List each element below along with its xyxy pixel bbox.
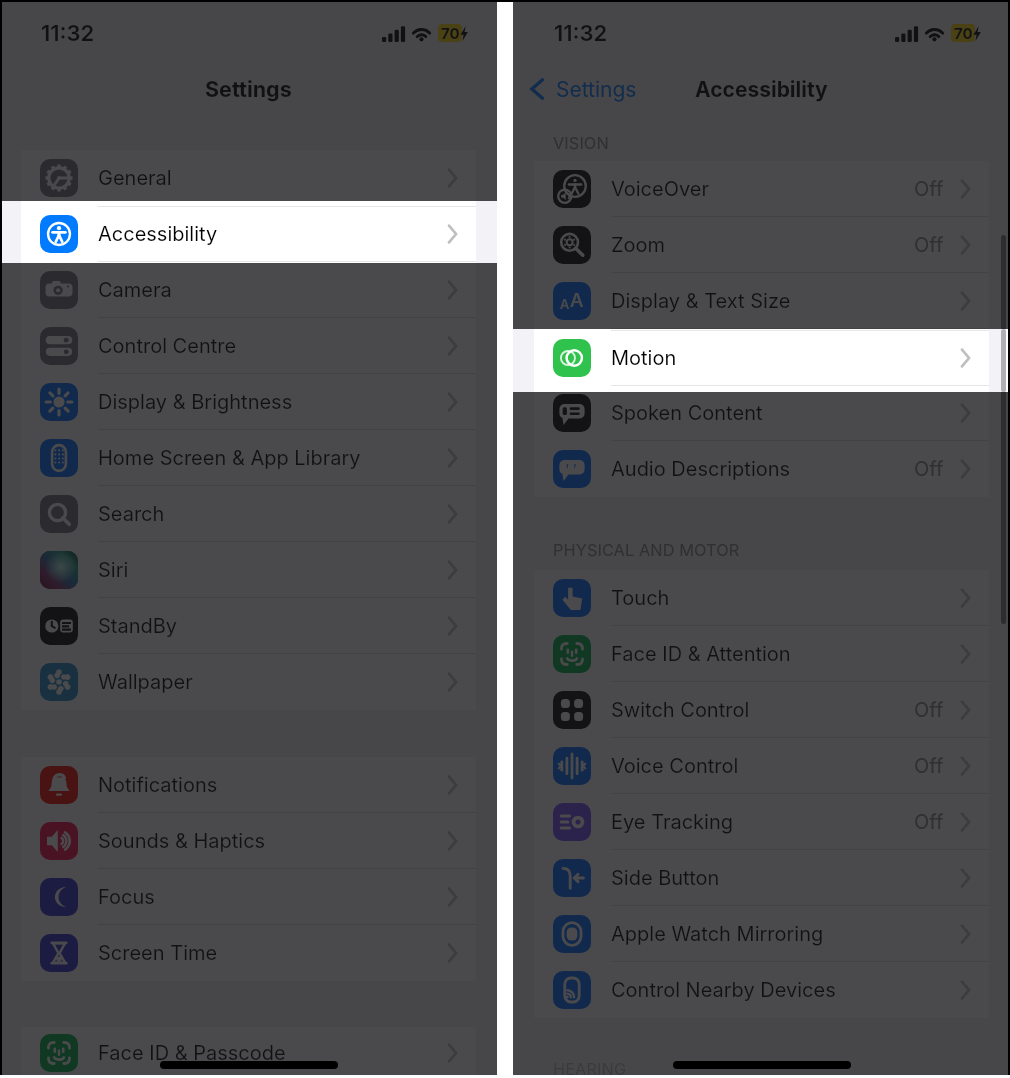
staticText: Motion: [611, 346, 677, 370]
staticText: Side Button: [611, 866, 720, 890]
staticText: VoiceOver: [611, 177, 710, 201]
staticText: Display & Brightness: [98, 390, 293, 414]
button[interactable]: Wallpaper: [0, 654, 497, 710]
staticText: A: [560, 296, 570, 312]
staticText: Wallpaper: [98, 670, 193, 694]
button[interactable]: Screen Time: [0, 925, 497, 981]
staticText: Audio Descriptions: [611, 457, 791, 481]
staticText: Switch Control: [611, 698, 750, 722]
staticText: Focus: [98, 885, 155, 909]
staticText: 70: [441, 24, 460, 42]
button[interactable]: Display & Brightness: [0, 374, 497, 430]
button[interactable]: Zoom: [513, 217, 1010, 273]
button[interactable]: Face ID & Attention: [513, 626, 1010, 682]
button[interactable]: Sounds & Haptics: [0, 813, 497, 869]
staticText: Face ID & Passcode: [98, 1041, 286, 1065]
staticText: Accessibility: [98, 222, 218, 246]
staticText: Face ID & Attention: [611, 642, 791, 666]
button[interactable]: A: [513, 273, 1010, 329]
staticText: Home Screen & App Library: [98, 446, 361, 470]
staticText: Control Centre: [98, 334, 237, 358]
button[interactable]: Siri: [0, 542, 497, 598]
staticText: Camera: [98, 278, 172, 302]
staticText: StandBy: [98, 614, 178, 638]
staticText: Off: [914, 457, 944, 481]
staticText: Spoken Content: [611, 401, 763, 425]
button[interactable]: Notifications: [0, 757, 497, 813]
staticText: General: [98, 166, 172, 190]
staticText: Apple Watch Mirroring: [611, 922, 824, 946]
staticText: Eye Tracking: [611, 810, 734, 834]
staticText: HEARING: [553, 1059, 627, 1078]
button[interactable]: Motion: [513, 329, 1010, 385]
button[interactable]: Motion: [513, 330, 1010, 386]
button[interactable]: Side Button: [513, 850, 1010, 906]
staticText: Off: [914, 810, 944, 834]
button[interactable]: Touch: [513, 570, 1010, 626]
staticText: Off: [914, 233, 944, 257]
staticText: Off: [914, 754, 944, 778]
button[interactable]: Search: [0, 486, 497, 542]
staticText: Screen Time: [98, 941, 218, 965]
staticText: PHYSICAL AND MOTOR: [553, 540, 740, 560]
staticText: Search: [98, 502, 165, 526]
staticText: Voice Control: [611, 754, 739, 778]
button[interactable]: Apple Watch Mirroring: [513, 906, 1010, 962]
button[interactable]: Audio Descriptions: [513, 441, 1010, 497]
button[interactable]: Eye Tracking: [513, 794, 1010, 850]
button[interactable]: Control Nearby Devices: [513, 962, 1010, 1018]
button[interactable]: StandBy: [0, 598, 497, 654]
staticText: 70: [954, 24, 973, 42]
button[interactable]: Home Screen & App Library: [0, 430, 497, 486]
button[interactable]: General: [0, 150, 497, 206]
staticText: Touch: [611, 586, 670, 610]
staticText: Settings: [556, 77, 637, 102]
button[interactable]: Voice Control: [513, 738, 1010, 794]
button[interactable]: Camera: [0, 262, 497, 318]
staticText: Off: [914, 698, 944, 722]
staticText: Settings: [205, 76, 292, 102]
staticText: Siri: [98, 558, 129, 582]
staticText: 11:32: [554, 20, 608, 47]
button[interactable]: Face ID & Passcode: [0, 1027, 497, 1078]
staticText: Motion: [611, 345, 677, 369]
staticText: Accessibility: [98, 222, 218, 246]
staticText: Accessibility: [695, 77, 828, 102]
button[interactable]: VoiceOver: [513, 161, 1010, 217]
staticText: Display & Text Size: [611, 289, 791, 313]
button[interactable]: Control Centre: [0, 318, 497, 374]
staticText: Notifications: [98, 773, 218, 797]
staticText: Sounds & Haptics: [98, 829, 266, 853]
button[interactable]: Switch Control: [513, 682, 1010, 738]
button[interactable]: Spoken Content: [513, 385, 1010, 441]
staticText: 11:32: [41, 20, 95, 47]
staticText: VISION: [553, 133, 609, 153]
button[interactable]: Accessibility: [0, 206, 497, 262]
button[interactable]: Back to Settings: [524, 75, 637, 103]
staticText: Control Nearby Devices: [611, 978, 836, 1002]
staticText: Zoom: [611, 233, 666, 257]
button[interactable]: Accessibility: [0, 206, 497, 262]
staticText: Off: [914, 177, 944, 201]
staticText: A: [570, 289, 584, 312]
button[interactable]: Focus: [0, 869, 497, 925]
